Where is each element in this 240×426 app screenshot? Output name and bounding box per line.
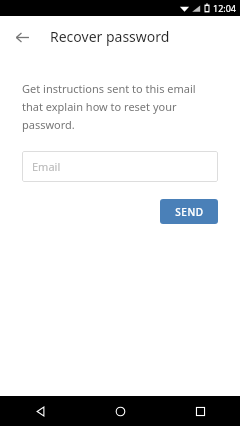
button[interactable]: Home (80, 396, 160, 426)
button[interactable]: SEND (160, 199, 218, 224)
staticText: SEND (175, 205, 204, 219)
staticText: Recover password (50, 27, 170, 46)
staticText: Get instructions sent to this email that… (22, 81, 218, 132)
staticText: 12:04 (213, 2, 237, 14)
button[interactable]: Back (0, 396, 80, 426)
staticText: Email (32, 159, 61, 174)
button[interactable]: Recent apps (160, 396, 240, 426)
button[interactable]: Email (22, 151, 218, 182)
button[interactable]: Back (6, 21, 38, 53)
